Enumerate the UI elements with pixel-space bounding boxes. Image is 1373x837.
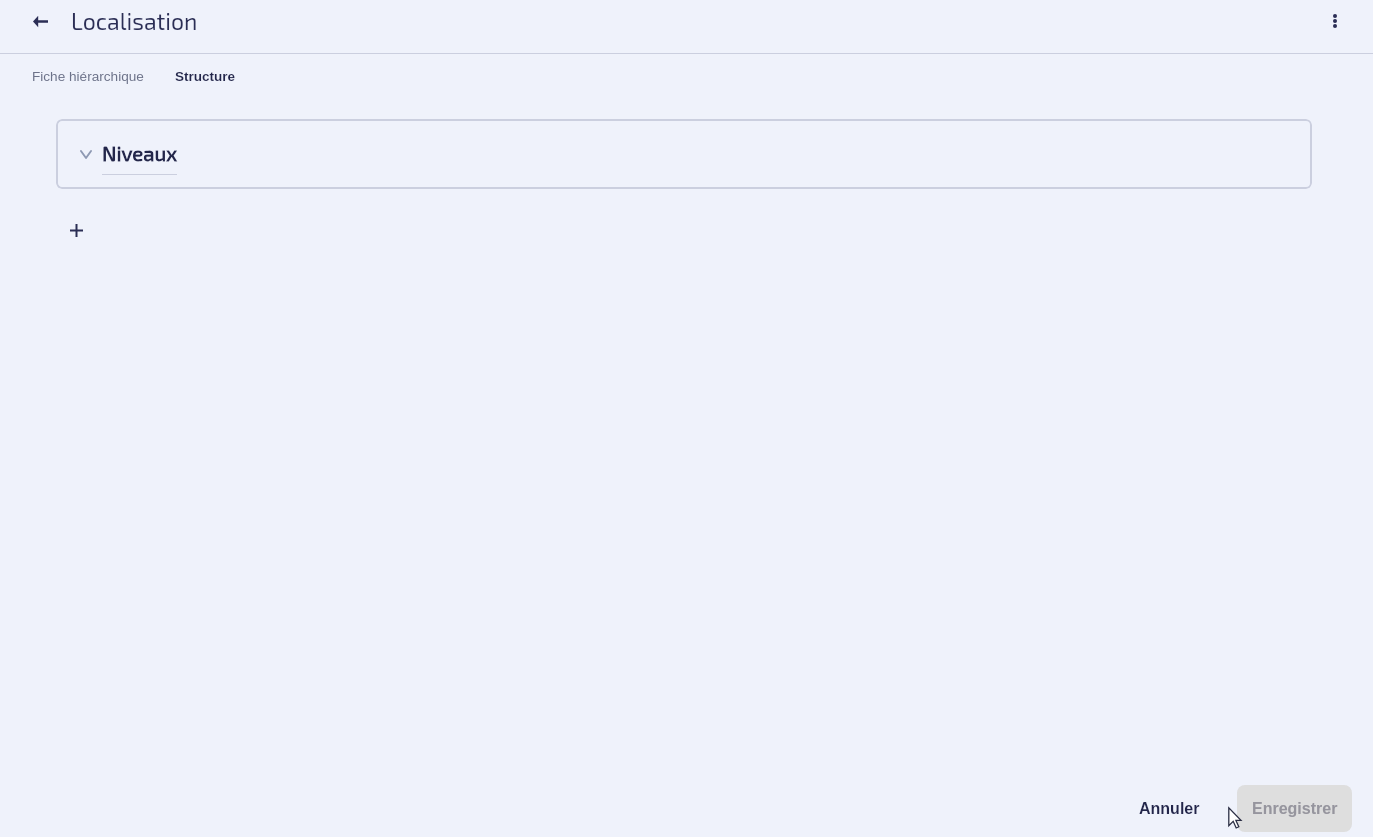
staticText: Fiche hiérarchique [32, 69, 144, 84]
button[interactable]: Fiche hiérarchique [20, 58, 156, 94]
staticText: Niveaux [102, 141, 178, 166]
button[interactable]: Structure [163, 58, 248, 94]
button[interactable]: Niveaux [56, 119, 1312, 189]
staticText: Enregistrer [1252, 800, 1338, 818]
button[interactable]: More options [1317, 3, 1353, 39]
button[interactable]: Annuler [1123, 792, 1216, 826]
staticText: Structure [175, 69, 236, 84]
staticText: Annuler [1139, 800, 1200, 818]
button[interactable]: Back [22, 3, 58, 39]
button[interactable]: Enregistrer [1237, 785, 1352, 832]
staticText: Localisation [71, 7, 198, 35]
button[interactable]: Add [58, 212, 94, 248]
